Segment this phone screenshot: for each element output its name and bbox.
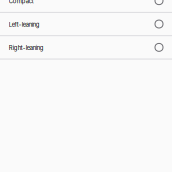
staticText: Right-leaning — [9, 44, 44, 51]
button[interactable]: Left-leaning — [0, 13, 172, 35]
staticText: Left-leaning — [9, 21, 40, 28]
button[interactable]: Compact — [0, 0, 172, 12]
button[interactable]: Right-leaning — [0, 36, 172, 58]
staticText: Compact — [9, 0, 34, 5]
